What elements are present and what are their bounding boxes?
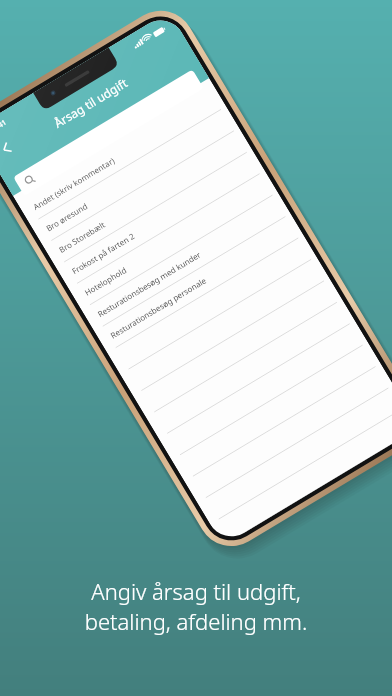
other: App screenshot preview (0, 0, 392, 696)
staticText: Angiv årsag til udgift, betaling, afdeli… (16, 576, 376, 636)
button[interactable]: Angiv årsag til udgift, betaling, afdeli… (0, 576, 392, 636)
